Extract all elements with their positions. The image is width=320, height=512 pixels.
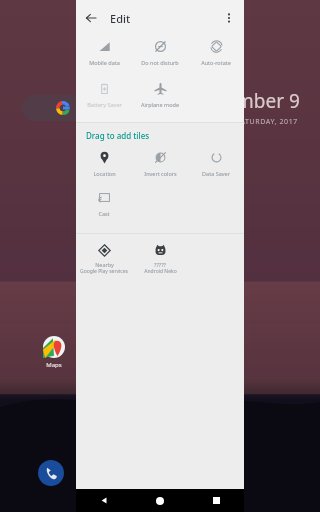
staticText: Drag to add tiles: [86, 130, 150, 141]
button[interactable]: More options: [214, 3, 244, 33]
staticText: Nearby: [95, 261, 114, 268]
button[interactable]: Data Saver: [188, 147, 244, 187]
button[interactable]: ?????: [132, 240, 188, 280]
staticText: Do not disturb: [141, 59, 179, 66]
staticText: Edit: [110, 11, 131, 26]
button[interactable]: Home: [132, 489, 188, 512]
staticText: Airplane mode: [141, 101, 179, 108]
button[interactable]: Mobile data: [76, 36, 132, 78]
button[interactable]: Do not disturb: [132, 36, 188, 78]
button[interactable]: Maps: [36, 336, 72, 369]
staticText: Location: [93, 170, 116, 177]
button[interactable]: Back: [76, 3, 106, 33]
staticText: Auto-rotate: [201, 59, 231, 66]
button[interactable]: Phone: [38, 460, 64, 486]
staticText: SATURDAY, 2017: [236, 117, 298, 127]
button[interactable]: Location: [76, 147, 132, 187]
button[interactable]: Invert colors: [132, 147, 188, 187]
button[interactable]: Auto-rotate: [188, 36, 244, 78]
staticText: Cast: [98, 210, 110, 217]
staticText: Maps: [46, 361, 62, 369]
staticText: Google Play services: [80, 268, 128, 275]
staticText: ?????: [154, 261, 166, 268]
staticText: Mobile data: [89, 59, 120, 66]
button[interactable]: Nearby: [76, 240, 132, 280]
staticText: Data Saver: [202, 170, 230, 177]
staticText: Android Neko: [144, 268, 177, 275]
staticText: mber 9: [236, 88, 300, 114]
button[interactable]: Recent apps: [188, 489, 244, 512]
staticText: Invert colors: [144, 170, 177, 177]
button[interactable]: Battery Saver: [76, 78, 132, 120]
button[interactable]: Airplane mode: [132, 78, 188, 120]
button[interactable]: Cast: [76, 187, 132, 227]
staticText: Battery Saver: [87, 101, 122, 108]
button[interactable]: Back: [76, 489, 132, 512]
button[interactable]: Google search: [22, 95, 100, 121]
